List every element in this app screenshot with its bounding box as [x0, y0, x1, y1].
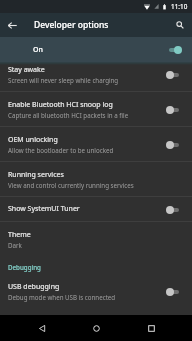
staticText: Debugging [8, 263, 41, 271]
staticText: View and control currently running servi… [8, 181, 134, 189]
staticText: 11:10 [171, 2, 188, 11]
staticText: Allow the bootloader to be unlocked [8, 146, 114, 154]
button[interactable]: Back [29, 315, 55, 341]
button[interactable]: Home [83, 315, 109, 341]
button[interactable]: On [0, 37, 192, 62]
staticText: Developer options [34, 19, 109, 31]
staticText: Show SystemUI Tuner [8, 204, 162, 214]
button[interactable]: Navigate up [0, 13, 24, 37]
button[interactable]: Search [168, 13, 192, 37]
staticText: USB debugging [8, 282, 60, 292]
staticText: Dark [8, 241, 22, 249]
button[interactable]: Stay awake [0, 62, 192, 91]
staticText: On [33, 45, 43, 55]
button[interactable]: Enable Bluetooth HCI snoop log [0, 92, 192, 126]
button[interactable]: Show SystemUI Tuner [0, 197, 192, 221]
staticText: Debug mode when USB is connected [8, 293, 116, 301]
staticText: Running services [8, 170, 64, 180]
button[interactable]: USB debugging [0, 274, 192, 308]
staticText: Stay awake [8, 65, 45, 75]
button[interactable]: Running services [0, 162, 192, 196]
staticText: OEM unlocking [8, 135, 58, 145]
staticText: Theme [8, 230, 31, 240]
button[interactable]: OEM unlocking [0, 127, 192, 161]
staticText: Screen will never sleep while charging [8, 76, 119, 84]
button[interactable]: Recent apps [138, 315, 164, 341]
staticText: Capture all bluetooth HCI packets in a f… [8, 111, 129, 119]
button[interactable]: Theme [0, 222, 192, 256]
staticText: Enable Bluetooth HCI snoop log [8, 100, 113, 110]
